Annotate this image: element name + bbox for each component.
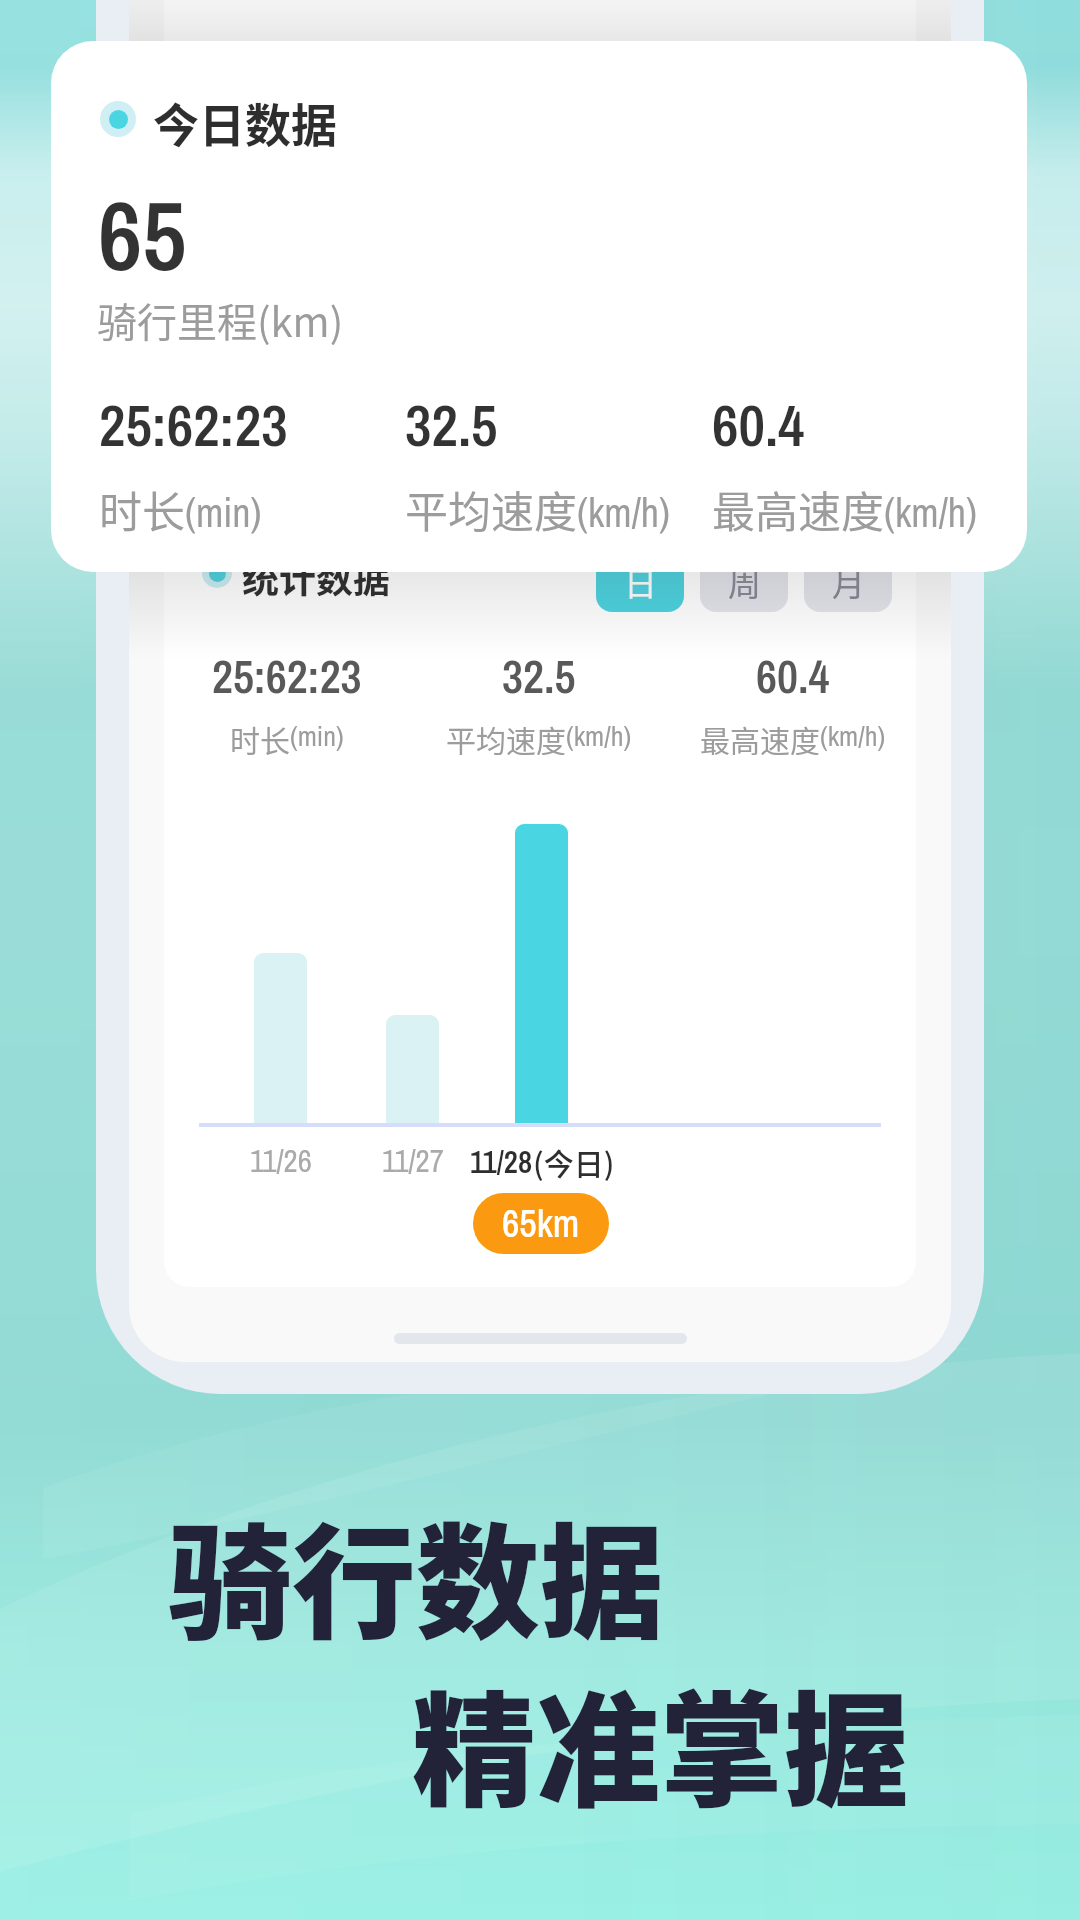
- button[interactable]: 周: [700, 552, 788, 612]
- staticText: 65: [98, 170, 187, 301]
- staticText: (今日): [533, 1140, 615, 1183]
- staticText: 最高速度: [700, 717, 820, 755]
- staticText: 32.5: [405, 386, 498, 464]
- staticText: 日: [624, 558, 657, 606]
- staticText: 月: [832, 558, 865, 606]
- staticText: 时长: [230, 717, 290, 755]
- staticText: 平均速度: [405, 478, 577, 540]
- staticText: (km/h): [566, 717, 632, 755]
- button[interactable]: 月: [804, 552, 892, 612]
- staticText: (km/h): [884, 486, 977, 540]
- staticText: 60.4: [712, 386, 805, 464]
- button[interactable]: 65km: [473, 1193, 609, 1254]
- staticText: 25:62:23: [99, 386, 288, 464]
- staticText: (km/h): [577, 486, 670, 540]
- staticText: 11/27: [382, 1140, 444, 1182]
- staticText: 平均速度: [446, 717, 566, 755]
- staticText: 32.5: [502, 645, 576, 707]
- staticText: 骑行里程(km): [97, 291, 344, 349]
- staticText: 25:62:23: [212, 645, 362, 707]
- staticText: 最高速度: [712, 478, 884, 540]
- staticText: (km/h): [820, 717, 886, 755]
- staticText: 11/26: [250, 1140, 312, 1182]
- staticText: 统计数据: [242, 550, 390, 604]
- staticText: (min): [290, 717, 344, 755]
- button[interactable]: 日: [596, 552, 684, 612]
- staticText: (min): [185, 486, 262, 540]
- staticText: 精准掌握: [412, 1652, 909, 1832]
- staticText: 11/28: [470, 1141, 533, 1183]
- staticText: 骑行数据: [168, 1484, 665, 1664]
- staticText: 今日数据: [153, 89, 337, 156]
- staticText: 周: [728, 558, 761, 606]
- staticText: 65km: [502, 1198, 580, 1249]
- staticText: 60.4: [756, 645, 830, 707]
- staticText: 时长: [99, 478, 185, 540]
